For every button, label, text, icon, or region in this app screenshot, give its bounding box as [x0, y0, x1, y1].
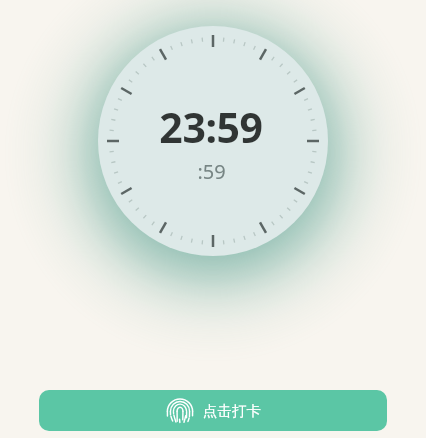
other: Fingerprint [166, 397, 194, 425]
staticText: 点击打卡 [203, 402, 261, 420]
button[interactable]: 点击打卡 [39, 390, 387, 431]
staticText: :59 [197, 158, 226, 185]
staticText: 23:59 [159, 99, 263, 155]
